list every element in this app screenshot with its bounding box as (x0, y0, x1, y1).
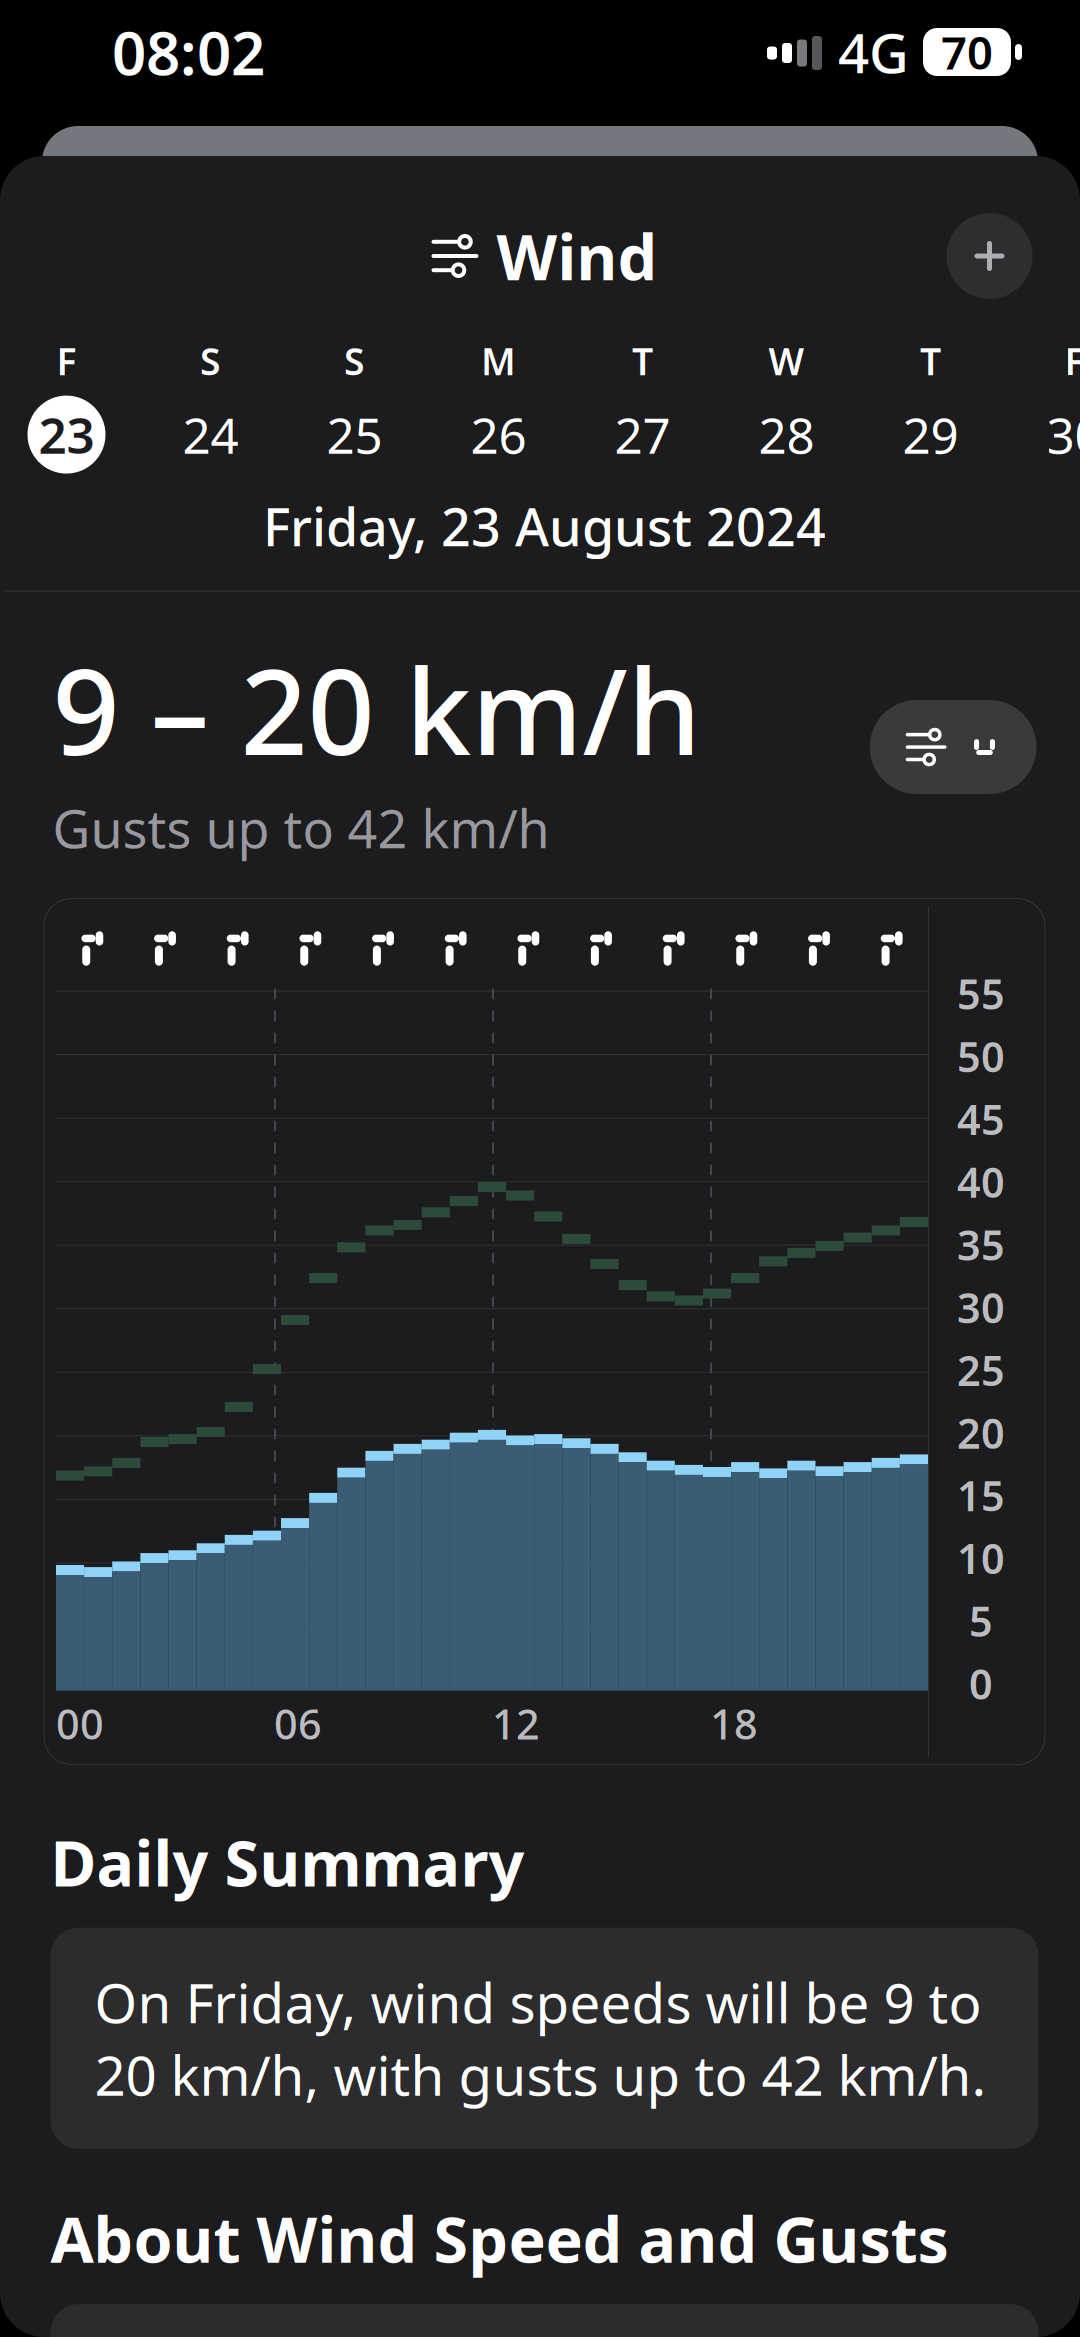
staticText: 50 (957, 1029, 1005, 1084)
staticText: 08:02 (112, 12, 265, 92)
staticText: 00 (56, 1696, 104, 1751)
staticText: 27 (614, 402, 670, 467)
staticText: 12 (492, 1696, 540, 1751)
staticText: M (481, 336, 516, 386)
staticText: F (1064, 336, 1080, 386)
staticText: Gusts up to 42 km/h (52, 793, 549, 862)
staticText: On Friday, wind speeds will be 9 to 20 k… (94, 1966, 986, 2111)
button[interactable]: M (448, 336, 548, 474)
staticText: 55 (957, 966, 1005, 1021)
button[interactable]: Close (946, 213, 1032, 299)
staticText: 23 (38, 402, 94, 467)
staticText: S (200, 336, 221, 386)
staticText: Daily Summary (50, 1820, 524, 1904)
staticText: 4G (838, 16, 909, 88)
button[interactable]: S (160, 336, 260, 474)
staticText: W (768, 336, 804, 386)
staticText: 10 (957, 1531, 1005, 1585)
staticText: 29 (902, 402, 958, 467)
button[interactable]: F (16, 336, 116, 474)
staticText: Wind (496, 214, 657, 298)
staticText: 18 (710, 1696, 758, 1751)
staticText: Friday, 23 August 2024 (263, 492, 826, 561)
button[interactable]: T (592, 336, 692, 474)
staticText: 28 (758, 402, 814, 467)
staticText: 06 (274, 1696, 322, 1751)
staticText: 5 (969, 1593, 993, 1648)
staticText: 45 (957, 1091, 1005, 1146)
button[interactable]: T (880, 336, 980, 474)
staticText: 9 – 20 km/h (52, 632, 701, 787)
staticText: 26 (470, 402, 526, 467)
staticText: 15 (957, 1468, 1005, 1523)
staticText: 25 (326, 402, 382, 467)
staticText: 70 (941, 22, 993, 82)
staticText: 24 (182, 402, 238, 467)
button[interactable]: W (736, 336, 836, 474)
staticText: 40 (957, 1154, 1005, 1209)
staticText: T (920, 336, 941, 386)
staticText: 25 (957, 1342, 1005, 1397)
button[interactable]: Change weather metric (870, 700, 1036, 794)
staticText: 20 (957, 1405, 1005, 1460)
button[interactable]: S (304, 336, 404, 474)
staticText: T (632, 336, 653, 386)
staticText: S (344, 336, 365, 386)
staticText: 30 (957, 1280, 1005, 1335)
staticText: 0 (969, 1656, 993, 1711)
staticText: F (56, 336, 76, 386)
staticText: About Wind Speed and Gusts (50, 2197, 948, 2280)
button[interactable]: F (1024, 336, 1080, 474)
staticText: 35 (957, 1217, 1005, 1272)
staticText: 30 (1046, 402, 1080, 467)
